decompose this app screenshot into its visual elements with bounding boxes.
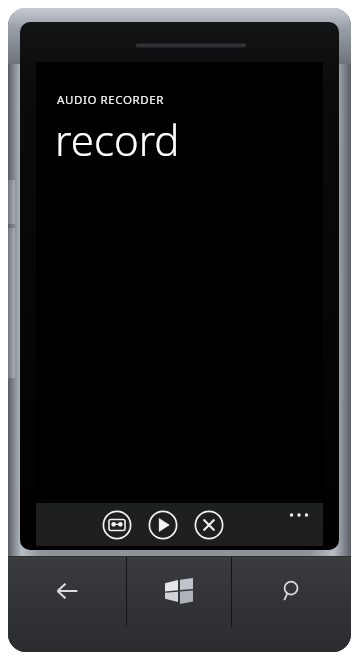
button[interactable]: More options — [283, 503, 315, 527]
staticText: record — [55, 111, 180, 168]
staticText: AUDIO RECORDER — [57, 92, 165, 108]
button[interactable]: Record — [102, 510, 132, 540]
button[interactable]: Back — [8, 557, 126, 652]
button[interactable]: Play — [148, 510, 178, 540]
button[interactable]: Search — [232, 557, 351, 652]
button[interactable]: Start — [127, 557, 231, 652]
button[interactable]: Delete — [194, 510, 224, 540]
